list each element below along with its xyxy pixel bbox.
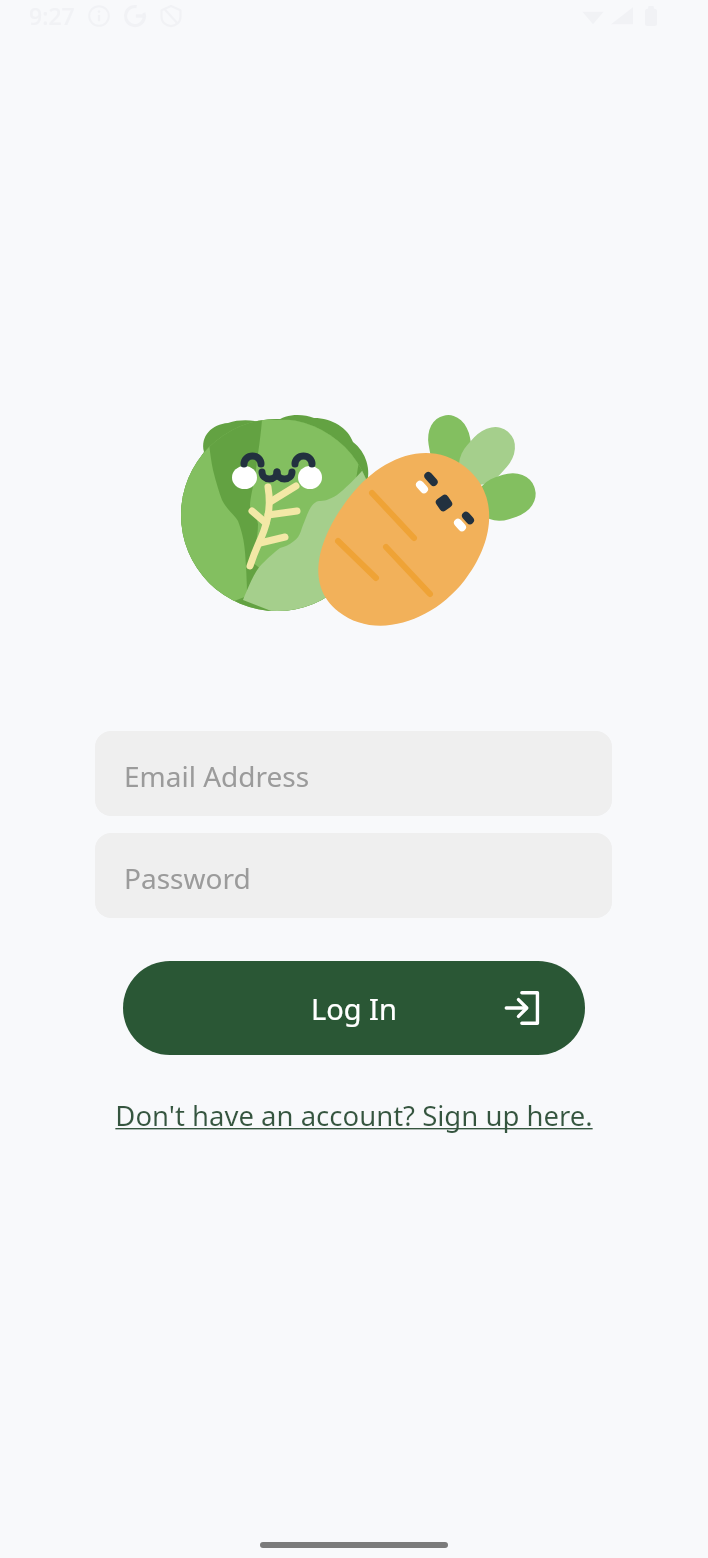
- button[interactable]: Password: [95, 833, 612, 918]
- staticText: Email Address: [124, 757, 310, 795]
- button[interactable]: Email Address: [95, 731, 612, 816]
- staticText: Log In: [311, 989, 397, 1028]
- staticText: Password: [124, 859, 251, 897]
- button[interactable]: Log In: [123, 961, 585, 1055]
- button[interactable]: Don't have an account? Sign up here.: [95, 1090, 613, 1140]
- staticText: Don't have an account? Sign up here.: [115, 1097, 593, 1134]
